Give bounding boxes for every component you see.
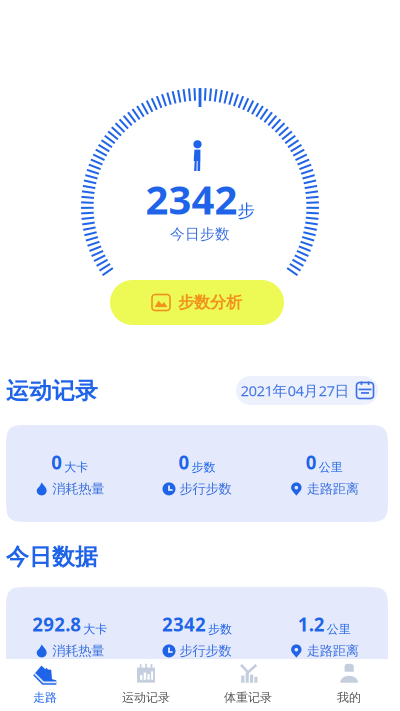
- button[interactable]: 步数分析: [110, 280, 284, 325]
- staticText: 步行步数: [179, 643, 231, 659]
- staticText: 2342: [162, 612, 206, 637]
- staticText: 走路距离: [307, 643, 359, 659]
- staticText: 步数分析: [178, 293, 242, 312]
- staticText: 运动记录: [6, 377, 98, 405]
- staticText: 步数: [191, 460, 215, 475]
- button[interactable]: 我的: [304, 659, 394, 711]
- staticText: 1.2: [298, 612, 325, 637]
- staticText: 我的: [337, 690, 361, 705]
- staticText: 292.8: [32, 612, 81, 637]
- staticText: 消耗热量: [52, 481, 104, 497]
- staticText: 大卡: [83, 622, 107, 637]
- staticText: 运动记录: [122, 690, 170, 705]
- staticText: 今日数据: [6, 543, 98, 571]
- staticText: 步行步数: [179, 481, 231, 497]
- staticText: 0: [306, 450, 317, 475]
- staticText: 消耗热量: [52, 643, 104, 659]
- staticText: 公里: [319, 460, 343, 475]
- staticText: 走路距离: [307, 481, 359, 497]
- button[interactable]: 走路: [0, 659, 90, 711]
- staticText: 大卡: [64, 460, 88, 475]
- button[interactable]: 2021年04月27日: [236, 376, 378, 405]
- staticText: 0: [178, 450, 189, 475]
- staticText: 2342: [145, 172, 237, 225]
- staticText: 2021年04月27日: [240, 381, 349, 400]
- button[interactable]: 体重记录: [203, 659, 293, 711]
- staticText: 体重记录: [224, 690, 272, 705]
- button[interactable]: 运动记录: [101, 659, 191, 711]
- staticText: 步数: [208, 622, 232, 637]
- staticText: 步: [237, 200, 254, 222]
- staticText: 0: [51, 450, 62, 475]
- staticText: 今日步数: [170, 225, 230, 243]
- staticText: 公里: [327, 622, 351, 637]
- staticText: 走路: [33, 690, 57, 705]
